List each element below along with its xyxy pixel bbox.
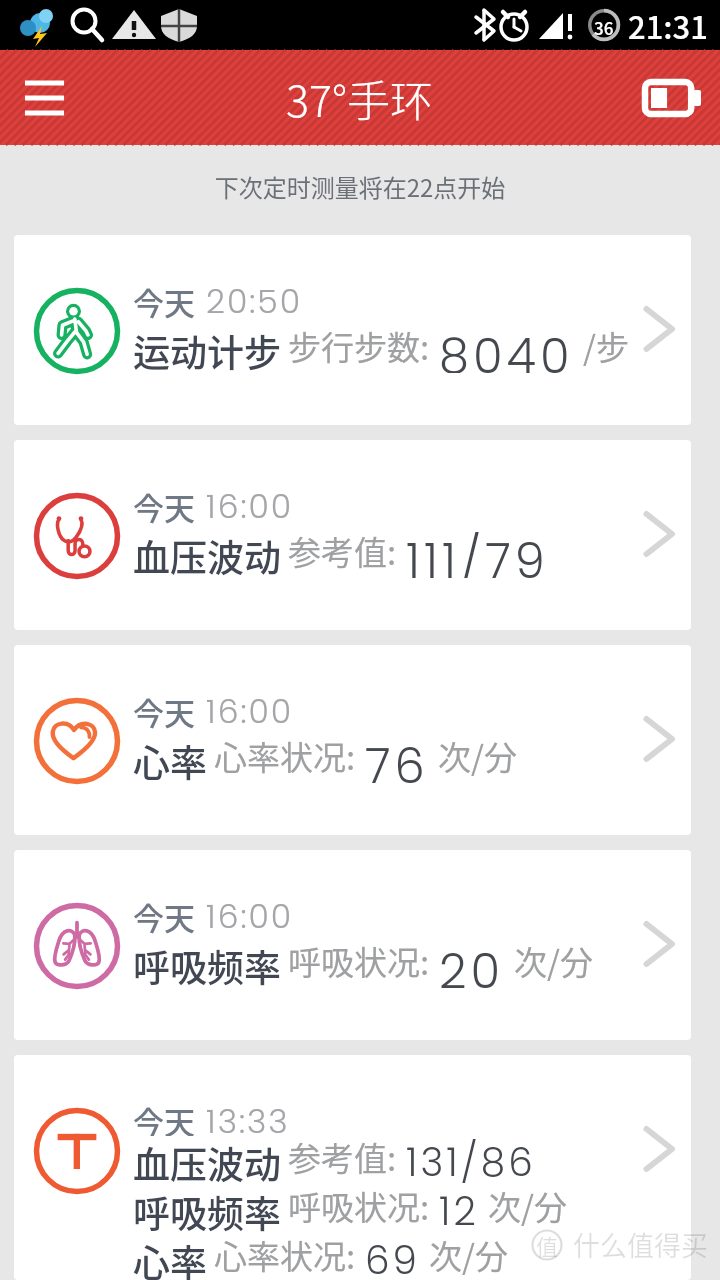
staticText: 8040: [439, 323, 574, 373]
staticText: 值: [536, 1229, 559, 1261]
staticText: 12: [439, 1184, 479, 1233]
staticText: 呼吸状况:: [288, 937, 430, 985]
staticText: 呼吸频率: [133, 939, 281, 989]
staticText: 血压波动: [133, 1136, 281, 1185]
other: Open details: [632, 300, 690, 358]
staticText: 111/79: [406, 528, 549, 578]
staticText: 心率: [133, 1234, 207, 1280]
staticText: 参考值:: [288, 1133, 397, 1181]
staticText: 呼吸状况:: [288, 1182, 430, 1230]
staticText: 呼吸频率: [133, 1185, 281, 1234]
other: Open details: [632, 710, 690, 768]
staticText: 16:00: [206, 483, 294, 529]
button[interactable]: Battery: [642, 79, 702, 117]
button[interactable]: 今天: [14, 645, 691, 835]
other: Open details: [632, 915, 690, 973]
staticText: 运动计步: [133, 324, 281, 374]
other: Open details: [632, 1120, 690, 1178]
button[interactable]: 今天: [14, 1055, 691, 1280]
staticText: 心率状况:: [214, 732, 356, 780]
button[interactable]: 今天: [14, 440, 691, 630]
staticText: 次/分: [514, 937, 593, 985]
staticText: 参考值:: [288, 527, 397, 575]
staticText: 血压波动: [133, 529, 281, 579]
button[interactable]: 今天: [14, 235, 691, 425]
button[interactable]: 今天: [14, 850, 691, 1040]
staticText: 什么值得买: [573, 1225, 708, 1264]
staticText: 今天: [133, 279, 195, 324]
staticText: 今天: [133, 689, 195, 734]
staticText: 次/分: [488, 1182, 567, 1230]
staticText: 次/分: [429, 1231, 508, 1279]
staticText: /步: [583, 322, 629, 370]
staticText: 76: [365, 733, 429, 783]
staticText: 今天: [133, 894, 195, 939]
staticText: 今天: [133, 1098, 195, 1136]
staticText: 心率状况:: [214, 1231, 356, 1279]
other: Open details: [632, 505, 690, 563]
staticText: 16:00: [206, 688, 294, 734]
staticText: 20: [439, 938, 505, 988]
staticText: 131/86: [406, 1135, 536, 1184]
staticText: 心率: [133, 734, 207, 784]
staticText: 今天: [133, 484, 195, 529]
staticText: 13:33: [206, 1098, 290, 1136]
staticText: 16:00: [206, 893, 294, 939]
staticText: 21:31: [628, 3, 708, 48]
staticText: 37°手环: [286, 67, 434, 129]
staticText: 次/分: [438, 732, 517, 780]
button[interactable]: Menu: [13, 72, 76, 124]
staticText: 步行步数:: [288, 322, 430, 370]
staticText: 20:50: [206, 278, 302, 324]
staticText: 69: [365, 1233, 420, 1280]
staticText: 36: [594, 15, 614, 40]
staticText: 下次定时测量将在22点开始: [0, 169, 720, 204]
